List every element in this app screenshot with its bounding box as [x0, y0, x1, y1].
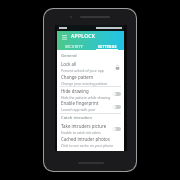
staticText: Click to see cache on your phone	[61, 143, 114, 148]
button[interactable]: Toggle setting	[112, 104, 121, 110]
staticText: Change your existing pattern	[61, 81, 108, 86]
staticText: APPLOCK	[71, 33, 96, 40]
staticText: SETTINGS	[98, 44, 117, 49]
button[interactable]: Toggle setting	[112, 126, 121, 132]
staticText: Hide drawing	[61, 88, 89, 94]
staticText: Take intruders picture	[61, 123, 107, 129]
button[interactable]: Take intruders picture	[57, 122, 124, 135]
staticText: Enable fingerprint	[61, 100, 99, 106]
staticText: Hide the pattern while drawing	[61, 95, 111, 100]
staticText: SECURITY	[65, 44, 83, 49]
button[interactable]: Open navigation menu	[60, 33, 68, 41]
button[interactable]: SECURITY	[57, 42, 90, 50]
staticText: General	[61, 53, 77, 59]
button[interactable]: Hide drawing	[57, 87, 124, 100]
button[interactable]: Lock all	[57, 60, 124, 73]
button[interactable]: Cached intruder photos	[57, 135, 124, 148]
staticText: Catch intruders	[61, 115, 92, 121]
staticText: Lock all	[61, 61, 77, 67]
button[interactable]: Lock all apps	[113, 63, 121, 71]
staticText: Launch app with your fingerprint	[61, 107, 112, 113]
staticText: Change pattern	[61, 74, 94, 80]
button[interactable]: SETTINGS	[90, 42, 124, 50]
button[interactable]: Enable fingerprint	[57, 100, 124, 113]
staticText: Cached intruder photos	[61, 136, 110, 142]
button[interactable]: Toggle setting	[112, 91, 121, 97]
button[interactable]: Change pattern	[57, 73, 124, 86]
staticText: Prevent unlock of your app	[61, 68, 104, 73]
staticText: Enable to catch intruders	[61, 130, 101, 135]
